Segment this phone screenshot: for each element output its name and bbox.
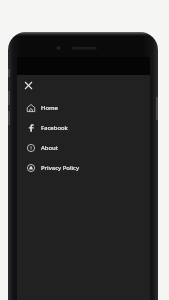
staticText: Privacy Policy: [41, 164, 80, 172]
button[interactable]: Close menu: [18, 75, 38, 95]
button[interactable]: About: [17, 138, 150, 158]
button[interactable]: Privacy Policy: [17, 158, 150, 178]
staticText: Home: [41, 104, 58, 112]
button[interactable]: Facebook: [17, 118, 150, 138]
staticText: About: [41, 144, 59, 152]
staticText: Facebook: [41, 124, 68, 132]
button[interactable]: Home: [17, 98, 150, 118]
